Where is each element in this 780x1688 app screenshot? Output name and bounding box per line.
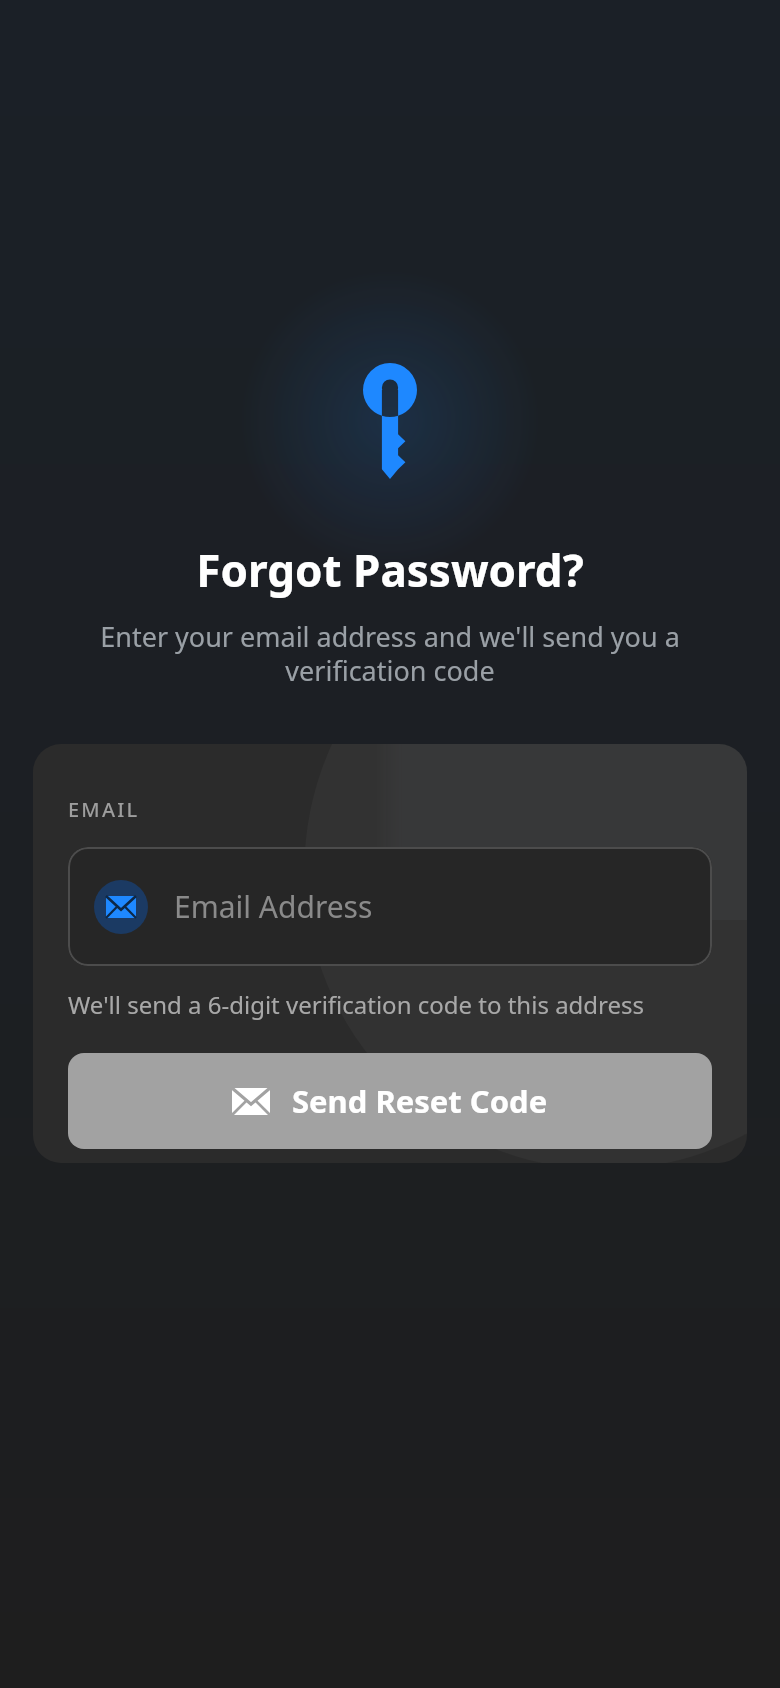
staticText: Enter your email address and we'll send … [58, 618, 722, 689]
staticText: Send Reset Code [292, 1080, 548, 1122]
staticText: We'll send a 6-digit verification code t… [68, 988, 645, 1021]
staticText: Forgot Password? [196, 540, 584, 600]
button[interactable]: Email Address [68, 847, 712, 966]
staticText: EMAIL [68, 796, 140, 823]
staticText: Email Address [174, 886, 373, 927]
button[interactable]: Send Reset Code [68, 1053, 712, 1149]
